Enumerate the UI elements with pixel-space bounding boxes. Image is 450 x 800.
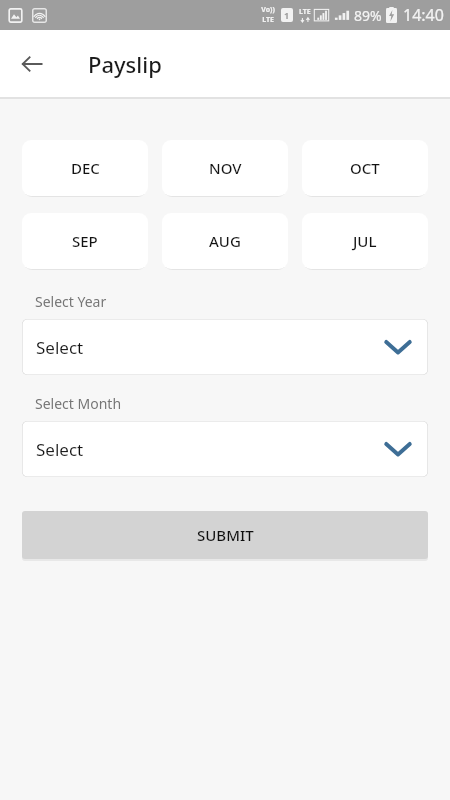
button[interactable]: JUL [302, 213, 428, 269]
staticText: 1 [284, 9, 290, 21]
staticText: SUBMIT [197, 525, 254, 545]
button[interactable]: OCT [302, 140, 428, 196]
staticText: Select Year [35, 292, 107, 311]
staticText: Select [36, 438, 84, 461]
staticText: NOV [209, 158, 242, 178]
button[interactable]: NOV [162, 140, 288, 196]
button[interactable]: Back [10, 42, 54, 86]
button[interactable]: Select [22, 319, 428, 375]
staticText: 14:40 [403, 4, 444, 26]
staticText: Select [36, 336, 84, 359]
staticText: Select Month [35, 394, 122, 413]
staticText: 89% [354, 6, 382, 25]
staticText: DEC [71, 158, 100, 178]
button[interactable]: SUBMIT [22, 511, 428, 559]
button[interactable]: SEP [22, 213, 148, 269]
staticText: OCT [350, 158, 380, 178]
staticText: LTE [299, 7, 311, 17]
button[interactable]: DEC [22, 140, 148, 196]
staticText: AUG [209, 231, 241, 251]
staticText: SEP [72, 231, 98, 251]
staticText: Payslip [88, 49, 162, 79]
button[interactable]: Select [22, 421, 428, 477]
staticText: Vo)) [261, 5, 275, 15]
staticText: LTE [262, 15, 274, 25]
button[interactable]: AUG [162, 213, 288, 269]
staticText: JUL [353, 231, 377, 251]
